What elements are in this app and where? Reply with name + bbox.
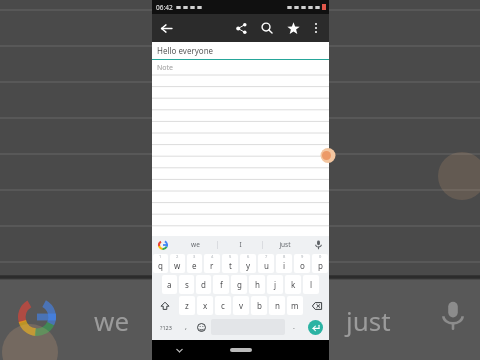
staticText: t xyxy=(229,260,232,271)
staticText: 2 xyxy=(176,254,179,259)
button[interactable]: Voice input xyxy=(307,236,329,253)
button[interactable]: d xyxy=(196,275,211,294)
staticText: . xyxy=(293,322,295,332)
staticText: w xyxy=(174,260,181,271)
staticText: x xyxy=(203,300,208,311)
staticText: Note xyxy=(157,63,174,73)
staticText: q xyxy=(158,260,163,271)
staticText: k xyxy=(291,279,296,290)
staticText: just xyxy=(279,240,291,249)
staticText: 8 xyxy=(283,254,286,259)
button[interactable]: Search xyxy=(254,15,280,41)
staticText: m xyxy=(291,300,299,311)
button[interactable]: s xyxy=(179,275,194,294)
button[interactable]: Favourite xyxy=(280,15,306,41)
button[interactable]: Back xyxy=(152,14,180,42)
button[interactable]: l xyxy=(303,275,319,294)
button[interactable]: Share xyxy=(228,15,254,41)
button[interactable]: Google xyxy=(152,236,174,253)
staticText: e xyxy=(192,260,197,271)
staticText: f xyxy=(220,279,223,290)
button[interactable]: 5 xyxy=(222,254,238,273)
button[interactable]: k xyxy=(285,275,301,294)
button[interactable]: Hide keyboard xyxy=(172,343,186,357)
button[interactable]: I xyxy=(218,236,262,253)
button[interactable]: 6 xyxy=(240,254,256,273)
staticText: v xyxy=(239,300,244,311)
staticText: , xyxy=(185,322,187,332)
staticText: b xyxy=(257,300,262,311)
button[interactable]: More options xyxy=(306,18,326,38)
button[interactable]: 9 xyxy=(294,254,310,273)
staticText: i xyxy=(283,260,286,271)
button[interactable]: v xyxy=(233,296,249,315)
staticText: I xyxy=(239,240,242,249)
button[interactable]: g xyxy=(231,275,247,294)
button[interactable]: h xyxy=(249,275,265,294)
button[interactable]: f xyxy=(213,275,229,294)
button[interactable]: m xyxy=(287,296,303,315)
staticText: y xyxy=(246,260,251,271)
button[interactable]: 4 xyxy=(204,254,220,273)
button[interactable]: z xyxy=(179,296,195,315)
button[interactable]: a xyxy=(162,275,177,294)
staticText: 6 xyxy=(247,254,250,259)
button[interactable]: b xyxy=(251,296,267,315)
button[interactable]: Home xyxy=(230,348,252,352)
button[interactable]: Enter xyxy=(308,320,323,335)
staticText: 0 xyxy=(319,254,322,259)
button[interactable]: Emoji xyxy=(193,316,209,338)
button[interactable]: x xyxy=(197,296,213,315)
button[interactable]: , xyxy=(179,316,193,338)
staticText: 9 xyxy=(301,254,304,259)
button[interactable]: 7 xyxy=(258,254,274,273)
staticText: ?123 xyxy=(160,324,172,331)
staticText: 3 xyxy=(193,254,196,259)
staticText: 5 xyxy=(229,254,232,259)
button[interactable]: Backspace xyxy=(305,296,328,315)
staticText: s xyxy=(185,279,189,290)
button[interactable]: we xyxy=(174,236,217,253)
button[interactable]: just xyxy=(263,236,307,253)
staticText: r xyxy=(210,260,214,271)
button[interactable]: Shift xyxy=(153,296,177,315)
button[interactable]: j xyxy=(267,275,283,294)
button[interactable]: c xyxy=(215,296,231,315)
button[interactable]: 0 xyxy=(312,254,328,273)
staticText: 1 xyxy=(159,254,162,259)
staticText: Hello everyone xyxy=(157,45,214,56)
staticText: we xyxy=(94,303,130,338)
staticText: 4 xyxy=(211,254,214,259)
staticText: j xyxy=(274,279,277,290)
button[interactable]: ?123 xyxy=(152,316,179,338)
button[interactable]: 2 xyxy=(170,254,185,273)
staticText: l xyxy=(310,279,313,290)
staticText: p xyxy=(318,260,323,271)
button[interactable]: 1 xyxy=(153,254,168,273)
staticText: we xyxy=(191,240,200,249)
staticText: g xyxy=(237,279,242,290)
staticText: a xyxy=(167,279,172,290)
staticText: h xyxy=(255,279,260,290)
staticText: 7 xyxy=(265,254,268,259)
staticText: o xyxy=(300,260,305,271)
button[interactable]: n xyxy=(269,296,285,315)
staticText: u xyxy=(264,260,269,271)
staticText: just xyxy=(346,303,391,338)
button[interactable]: . xyxy=(287,316,301,338)
button[interactable]: 8 xyxy=(276,254,292,273)
button[interactable]: 3 xyxy=(187,254,202,273)
staticText: c xyxy=(221,300,225,311)
staticText: n xyxy=(275,300,280,311)
staticText: 06:42 xyxy=(156,3,173,12)
staticText: d xyxy=(201,279,206,290)
staticText: z xyxy=(185,300,189,311)
